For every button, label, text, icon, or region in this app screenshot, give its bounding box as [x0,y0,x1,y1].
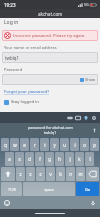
button[interactable]: e [20,138,29,151]
button[interactable]: v [46,167,55,181]
button[interactable]: Settings [90,114,98,122]
staticText: Your name or email address [4,45,57,50]
button[interactable]: Show [2,74,98,85]
staticText: s [18,156,21,162]
button[interactable]: ?123 [1,182,22,196]
staticText: i [74,142,76,148]
staticText: Incorrect password. Please try again. [13,33,86,39]
button[interactable]: x [26,167,35,181]
staticText: Stay logged in [11,99,39,105]
button[interactable]: Voice input [92,128,97,133]
button[interactable]: g [45,152,54,166]
button[interactable]: m [76,167,85,181]
staticText: a [8,156,11,162]
staticText: f [39,156,41,162]
button[interactable]: c [36,167,45,181]
staticText: e [23,142,26,148]
button[interactable]: w [10,138,19,151]
button[interactable]: q [1,138,9,151]
button[interactable]: Emoji [4,200,10,206]
button[interactable]: Clipboard [66,114,74,122]
button[interactable]: Go [76,182,99,196]
staticText: x [29,171,32,177]
button[interactable]: f [35,152,44,166]
button[interactable]: twblq1 [2,52,98,63]
staticText: 5G [84,2,89,7]
staticText: Show [85,77,96,82]
staticText: h [58,156,61,162]
button[interactable]: d [25,152,34,166]
staticText: j [69,156,71,162]
button[interactable]: h [55,152,64,166]
button[interactable]: Shift [1,167,15,181]
staticText: Password [4,67,23,72]
staticText: b [59,171,62,177]
staticText: twblq1 [5,55,20,61]
staticText: m [78,171,83,177]
button[interactable]: b [56,167,65,181]
staticText: r [34,142,36,148]
staticText: akchat.com [38,11,63,17]
staticText: space [44,187,54,192]
staticText: d [28,156,31,162]
button[interactable]: p [90,138,99,151]
staticText: l [89,156,91,162]
button[interactable]: l [85,152,94,166]
button[interactable]: k [75,152,84,166]
button[interactable]: t [40,138,49,151]
staticText: y [53,142,56,148]
staticText: w [13,142,17,148]
staticText: c [39,171,42,177]
button[interactable]: Voice typing [90,200,96,206]
staticText: n [69,171,72,177]
button[interactable]: r [30,138,39,151]
button[interactable]: a [5,152,14,166]
staticText: v [49,171,52,177]
button[interactable]: n [66,167,75,181]
staticText: t [44,142,46,148]
button[interactable]: Theme [82,114,90,122]
staticText: g [48,156,51,162]
button[interactable]: o [80,138,89,151]
button[interactable]: Stay logged in [4,99,39,105]
button[interactable]: y [50,138,59,151]
button[interactable]: u [60,138,69,151]
button[interactable]: Delete [86,167,99,181]
button[interactable]: i [70,138,79,151]
button[interactable]: z [16,167,25,181]
staticText: Go [85,187,91,192]
staticText: twblq1 [44,130,57,135]
button[interactable]: space [23,182,75,196]
button[interactable]: Show [80,77,96,82]
staticText: password for akchat.com [28,125,73,130]
staticText: p [93,142,96,148]
button[interactable]: Forgot your password? [4,89,49,95]
button[interactable]: Translate [74,114,82,122]
staticText: k [78,156,81,162]
staticText: o [83,142,86,148]
staticText: 19:23 [4,2,16,8]
staticText: z [19,171,22,177]
staticText: q [4,142,7,148]
staticText: ?123 [8,187,16,192]
staticText: u [63,142,66,148]
staticText: Log in [4,19,19,26]
button[interactable]: s [15,152,24,166]
button[interactable]: j [65,152,74,166]
